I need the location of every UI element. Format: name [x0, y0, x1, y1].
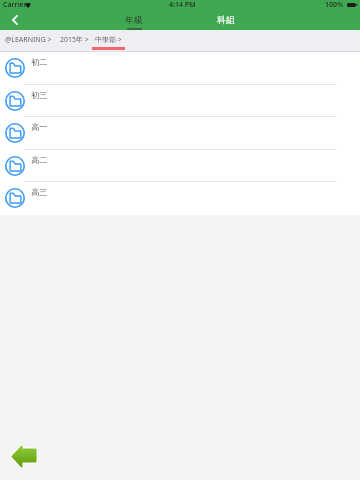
- button[interactable]: 高二: [0, 150, 360, 183]
- button[interactable]: Back: [4, 10, 25, 30]
- button[interactable]: 2015年 >: [60, 35, 89, 45]
- staticText: 高三: [31, 187, 48, 197]
- button[interactable]: 高一: [0, 117, 360, 150]
- staticText: Carrier: [3, 0, 27, 10]
- staticText: 4:14 PM: [169, 0, 196, 10]
- button[interactable]: 高三: [0, 182, 360, 215]
- button[interactable]: Back: [11, 445, 37, 468]
- button[interactable]: 中學部 >: [92, 35, 125, 50]
- button[interactable]: 年級: [104, 11, 164, 30]
- staticText: 2015年 >: [60, 35, 89, 45]
- button[interactable]: 初二: [0, 52, 360, 85]
- button[interactable]: 科組: [196, 11, 256, 30]
- staticText: 高二: [31, 155, 48, 165]
- staticText: 高一: [31, 122, 48, 132]
- staticText: 科組: [217, 14, 235, 25]
- button[interactable]: @LEARNING >: [5, 35, 52, 45]
- staticText: 年級: [125, 14, 143, 25]
- staticText: 100%: [325, 0, 344, 10]
- staticText: 初二: [31, 57, 48, 67]
- staticText: @LEARNING >: [5, 35, 52, 45]
- button[interactable]: 初三: [0, 85, 360, 118]
- staticText: 初三: [31, 90, 48, 100]
- staticText: 中學部 >: [95, 35, 122, 45]
